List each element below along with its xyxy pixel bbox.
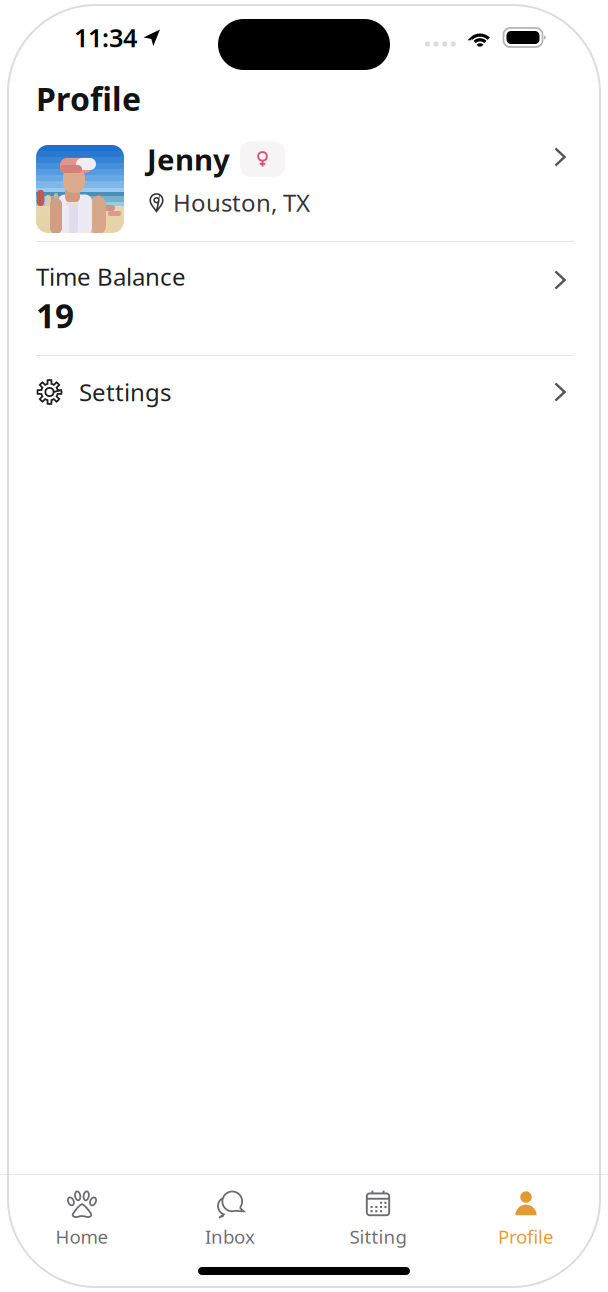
staticText: Profile — [36, 77, 141, 120]
staticText: Home — [55, 1224, 108, 1249]
button[interactable]: Time Balance — [0, 242, 608, 355]
staticText: Time Balance — [36, 260, 186, 292]
staticText: Inbox — [205, 1224, 255, 1249]
staticText: Jenny — [147, 140, 230, 179]
button[interactable]: Home — [8, 1175, 156, 1257]
button[interactable]: Profile — [452, 1175, 600, 1257]
staticText: Settings — [79, 376, 171, 408]
staticText: 11:34 — [74, 21, 137, 54]
staticText: Profile — [498, 1224, 554, 1249]
button[interactable]: Jenny — [0, 137, 608, 241]
staticText: 19 — [36, 293, 74, 338]
staticText: Sitting — [349, 1224, 406, 1249]
button[interactable]: Sitting — [304, 1175, 452, 1257]
staticText: Houston, TX — [173, 186, 310, 218]
button[interactable]: Settings — [0, 356, 608, 432]
button[interactable]: Inbox — [156, 1175, 304, 1257]
